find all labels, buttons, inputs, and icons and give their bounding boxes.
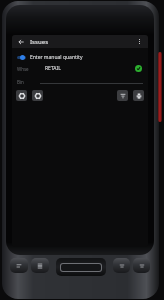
button[interactable]: Print [133, 90, 144, 101]
staticText: RETAIL [45, 65, 61, 72]
button[interactable]: Options [32, 90, 43, 101]
staticText: Issues [30, 38, 49, 46]
button[interactable]: Filter [117, 90, 128, 101]
button[interactable]: Menu [31, 258, 49, 273]
button[interactable]: Back key [113, 258, 130, 273]
button[interactable]: Enter manual quantity [12, 51, 148, 63]
button[interactable]: Back [15, 36, 26, 47]
button[interactable]: Confirmed [134, 64, 143, 73]
button[interactable]: Home key [133, 258, 150, 273]
staticText: Enter manual quantity [30, 54, 83, 61]
button[interactable]: More options [134, 36, 145, 47]
staticText: Bin [17, 79, 24, 85]
button[interactable]: Scan left [10, 258, 28, 273]
button[interactable]: Whse [12, 63, 148, 74]
button[interactable]: Bin [12, 74, 148, 87]
button[interactable]: Scanner [56, 258, 106, 276]
staticText: Whse [17, 66, 29, 72]
button[interactable]: Settings [16, 90, 27, 101]
